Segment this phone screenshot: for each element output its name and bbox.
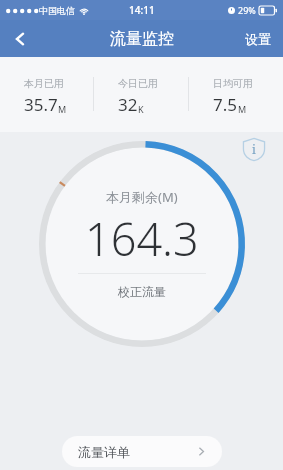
button[interactable]: 校正流量 bbox=[87, 274, 197, 308]
staticText: 35.7 bbox=[24, 93, 58, 116]
staticText: K bbox=[138, 103, 144, 115]
button[interactable]: Info bbox=[239, 134, 269, 164]
staticText: 流量监控 bbox=[110, 29, 174, 49]
staticText: 164.3 bbox=[85, 208, 199, 269]
staticText: 今日已用 bbox=[118, 77, 158, 90]
staticText: 流量详单 bbox=[78, 444, 130, 460]
staticText: M bbox=[58, 103, 67, 115]
staticText: 校正流量 bbox=[118, 284, 166, 299]
button[interactable]: Back bbox=[0, 20, 40, 57]
staticText: 7.5 bbox=[213, 93, 238, 116]
staticText: M bbox=[238, 103, 247, 115]
staticText: 设置 bbox=[245, 31, 271, 47]
staticText: 本月剩余(M) bbox=[106, 188, 178, 206]
staticText: 本月已用 bbox=[24, 77, 64, 90]
button[interactable]: 流量详单 bbox=[62, 436, 222, 467]
staticText: 32 bbox=[118, 93, 138, 116]
staticText: 14:11 bbox=[129, 3, 155, 17]
staticText: 29% bbox=[238, 4, 256, 16]
button[interactable]: 设置 bbox=[233, 20, 283, 57]
staticText: 日均可用 bbox=[213, 77, 253, 90]
staticText: 中国电信 bbox=[39, 5, 75, 16]
staticText: i bbox=[252, 141, 256, 157]
